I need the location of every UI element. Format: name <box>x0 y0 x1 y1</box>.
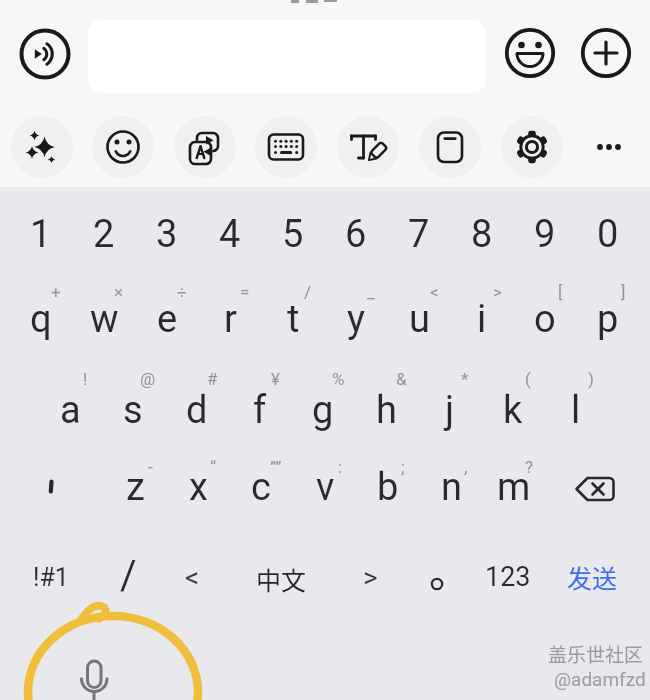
staticText: 中文 <box>256 561 307 597</box>
button[interactable]: j <box>415 383 485 437</box>
button[interactable] <box>505 28 555 78</box>
button[interactable]: u <box>384 292 454 346</box>
button[interactable] <box>589 127 629 167</box>
button[interactable]: i <box>447 292 517 346</box>
button[interactable]: t <box>258 292 328 346</box>
staticText: , <box>464 457 468 477</box>
button[interactable]: 7 <box>384 207 454 261</box>
button[interactable]: > <box>335 550 405 604</box>
staticText: z <box>126 465 145 510</box>
button[interactable]: n <box>416 460 486 514</box>
button[interactable]: 0 <box>573 207 643 261</box>
button[interactable] <box>20 29 70 79</box>
staticText: s <box>123 388 143 433</box>
staticText: & <box>396 369 407 389</box>
staticText: 7 <box>408 212 430 257</box>
staticText: x <box>189 465 208 510</box>
staticText: y <box>347 297 365 342</box>
button[interactable]: / <box>93 548 163 602</box>
button[interactable]: m <box>479 460 549 514</box>
staticText: !#1 <box>33 563 69 592</box>
button[interactable]: 中文 <box>246 552 316 606</box>
staticText: ; <box>401 457 405 477</box>
staticText: p <box>597 297 619 342</box>
button[interactable]: 8 <box>447 207 517 261</box>
staticText: t <box>287 297 300 342</box>
button[interactable]: 4 <box>195 207 265 261</box>
button[interactable]: a <box>35 383 105 437</box>
staticText: n <box>441 465 462 510</box>
button[interactable]: 5 <box>258 207 328 261</box>
button[interactable]: 发送 <box>557 550 627 604</box>
staticText: : <box>338 457 343 477</box>
button[interactable]: v <box>290 460 360 514</box>
button[interactable]: s <box>98 383 168 437</box>
staticText: = <box>240 282 250 302</box>
button[interactable]: 2 <box>69 207 139 261</box>
staticText: < <box>185 561 200 594</box>
button[interactable] <box>337 116 399 178</box>
button[interactable]: h <box>351 383 421 437</box>
staticText: 发送 <box>567 559 618 595</box>
staticText: f <box>253 388 267 433</box>
button[interactable]: b <box>353 460 423 514</box>
button[interactable]: w <box>69 292 139 346</box>
staticText: 2 <box>93 212 115 257</box>
button[interactable] <box>501 116 563 178</box>
staticText: j <box>445 388 455 433</box>
staticText: [ <box>558 282 563 302</box>
button[interactable]: o <box>510 292 580 346</box>
button[interactable]: y <box>321 292 391 346</box>
button[interactable]: 6 <box>321 207 391 261</box>
button[interactable] <box>255 116 317 178</box>
staticText: # <box>207 369 218 389</box>
button[interactable] <box>11 116 73 178</box>
staticText: @adamfzd <box>554 668 646 690</box>
button[interactable]: 3 <box>132 207 202 261</box>
button[interactable] <box>25 462 77 512</box>
staticText: v <box>316 465 335 510</box>
button[interactable] <box>565 464 625 514</box>
button[interactable] <box>174 116 236 178</box>
button[interactable] <box>419 116 481 178</box>
staticText: > <box>493 282 502 302</box>
staticText: h <box>376 388 397 433</box>
button[interactable]: z <box>100 460 170 514</box>
button[interactable]: 9 <box>510 207 580 261</box>
button[interactable]: 123 <box>473 550 543 604</box>
staticText: 9 <box>534 212 556 257</box>
staticText: m <box>497 465 531 510</box>
button[interactable]: e <box>132 292 202 346</box>
button[interactable]: c <box>226 460 296 514</box>
button[interactable]: k <box>478 383 548 437</box>
staticText: / <box>120 552 137 599</box>
button[interactable]: d <box>162 383 232 437</box>
button[interactable]: r <box>195 292 265 346</box>
button[interactable]: l <box>541 383 611 437</box>
button[interactable]: f <box>225 383 295 437</box>
staticText: + <box>51 282 61 302</box>
button[interactable]: p <box>573 292 643 346</box>
staticText: 5 <box>282 212 304 257</box>
button[interactable]: q <box>6 292 76 346</box>
button[interactable]: !#1 <box>16 550 86 604</box>
staticText: b <box>377 465 399 510</box>
staticText: 1 <box>30 212 52 257</box>
staticText: e <box>157 297 178 342</box>
button[interactable]: 1 <box>6 207 76 261</box>
button[interactable]: < <box>157 550 227 604</box>
staticText: q <box>30 297 52 342</box>
staticText: i <box>477 297 487 342</box>
button[interactable] <box>92 116 154 178</box>
staticText: < <box>430 282 439 302</box>
staticText: / <box>304 282 312 302</box>
staticText: ? <box>525 457 534 477</box>
button[interactable]: x <box>163 460 233 514</box>
button[interactable] <box>64 650 124 700</box>
button[interactable] <box>581 28 631 78</box>
staticText: o <box>534 297 556 342</box>
staticText: ] <box>621 282 626 302</box>
button[interactable]: g <box>288 383 358 437</box>
button[interactable] <box>410 558 464 602</box>
